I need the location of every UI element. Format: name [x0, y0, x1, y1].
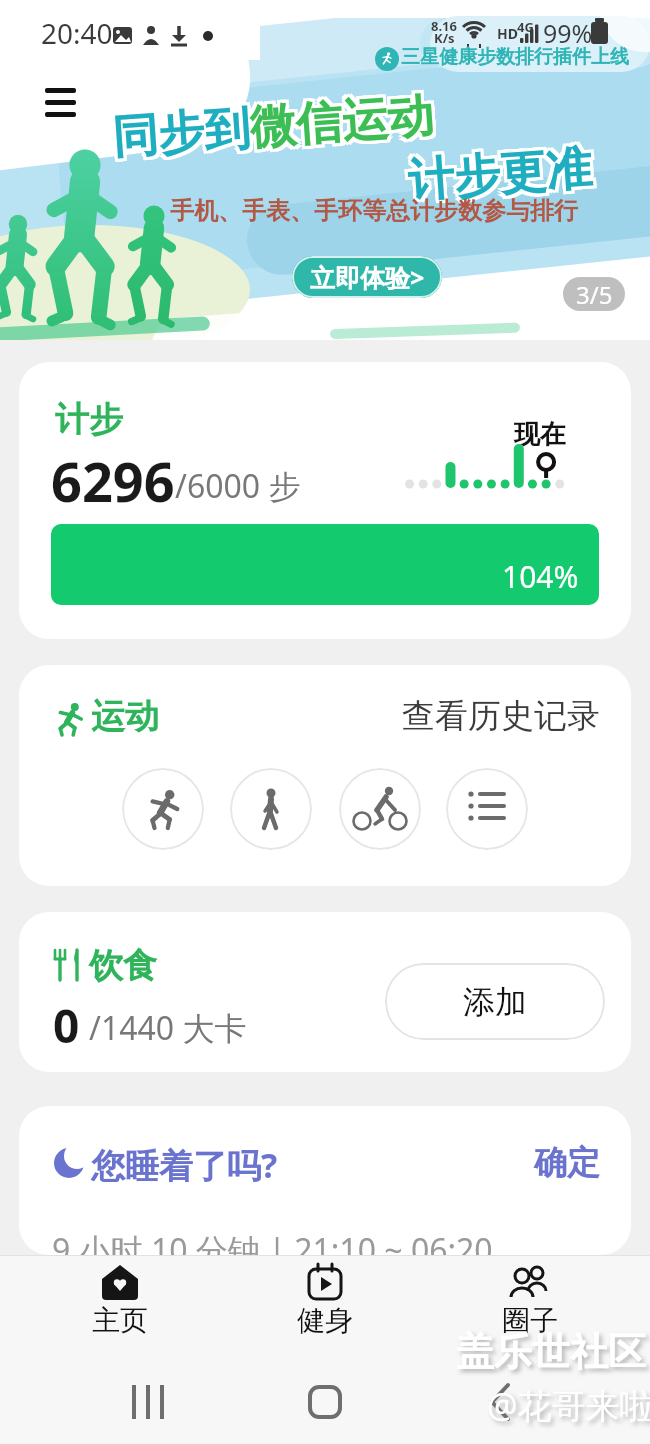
staticText: 计步更准 — [406, 137, 594, 207]
button[interactable] — [339, 768, 421, 850]
staticText: 计步更准 — [403, 140, 591, 211]
staticText: 手机、手表、手环等总计步数参与排行 — [170, 196, 578, 226]
staticText: 计步更准 — [406, 143, 594, 213]
staticText: 同步到微信运动 — [110, 87, 436, 167]
staticText: 9 小时 10 分钟 | 21:10 ~ 06:20 — [52, 1228, 493, 1255]
button[interactable]: 立即体验> — [292, 256, 442, 298]
staticText: @花哥来啦 — [487, 1382, 650, 1428]
button[interactable] — [524, 1134, 604, 1186]
button[interactable]: 您睡着了吗? — [19, 1106, 631, 1255]
staticText: HD — [497, 24, 518, 43]
button[interactable] — [98, 1345, 198, 1444]
staticText: 同步到微信运动 — [108, 90, 433, 170]
staticText: 现在 — [514, 418, 566, 451]
staticText: 运动 — [91, 695, 159, 738]
staticText: 99% — [543, 16, 593, 50]
staticText: 计步更准 — [409, 142, 597, 213]
button[interactable] — [275, 1345, 375, 1444]
button[interactable]: 计步 — [19, 362, 631, 639]
staticText: 健身 — [297, 1303, 353, 1338]
button[interactable] — [446, 768, 528, 850]
staticText: 盖乐世社区 — [456, 1328, 646, 1376]
button[interactable] — [275, 1255, 375, 1345]
button[interactable] — [450, 1345, 550, 1444]
staticText: /6000 步 — [175, 464, 301, 508]
staticText: 计步更准 — [406, 140, 594, 210]
button[interactable]: 添加 — [385, 963, 605, 1040]
staticText: 计步更准 — [403, 143, 591, 214]
staticText: 8.16 — [431, 17, 457, 35]
staticText: 添加 — [463, 982, 527, 1022]
staticText: 计步更准 — [409, 139, 597, 210]
staticText: K/s — [434, 29, 455, 47]
staticText: 圈子 — [502, 1303, 558, 1338]
staticText: 同步到微信运动 — [110, 84, 435, 164]
staticText: 计步更准 — [409, 136, 597, 207]
staticText: 6296 — [51, 444, 175, 518]
button[interactable] — [480, 1255, 580, 1345]
staticText: 4G — [517, 18, 534, 36]
button[interactable] — [122, 768, 204, 850]
button[interactable] — [230, 768, 312, 850]
staticText: 同步到微信运动 — [113, 84, 438, 164]
button[interactable] — [70, 1255, 170, 1345]
staticText: 同步到微信运动 — [107, 84, 432, 164]
staticText: 立即体验> — [310, 260, 425, 294]
staticText: 您睡着了吗? — [91, 1142, 278, 1188]
staticText: 饮食 — [89, 944, 157, 987]
staticText: 3/5 — [576, 278, 613, 311]
staticText: 20:40 — [41, 14, 113, 52]
staticText: 同步到微信运动 — [114, 90, 439, 170]
staticText: 计步更准 — [403, 137, 591, 208]
button[interactable]: 三星健康步数排行插件上线 — [401, 45, 629, 69]
staticText: 同步到微信运动 — [107, 87, 433, 167]
staticText: 三星健康步数排行插件上线 — [401, 45, 629, 69]
staticText: 计步 — [55, 398, 123, 441]
staticText: 104% — [502, 556, 579, 597]
staticText: 确定 — [534, 1142, 600, 1184]
button[interactable] — [30, 75, 90, 130]
button[interactable] — [397, 691, 603, 739]
staticText: 同步到微信运动 — [111, 90, 436, 170]
staticText: 主页 — [92, 1303, 148, 1338]
staticText: /1440 大卡 — [89, 1006, 247, 1050]
staticText: 查看历史记录 — [402, 695, 600, 737]
staticText: 同步到微信运动 — [113, 87, 439, 167]
staticText: 0 — [53, 994, 80, 1057]
